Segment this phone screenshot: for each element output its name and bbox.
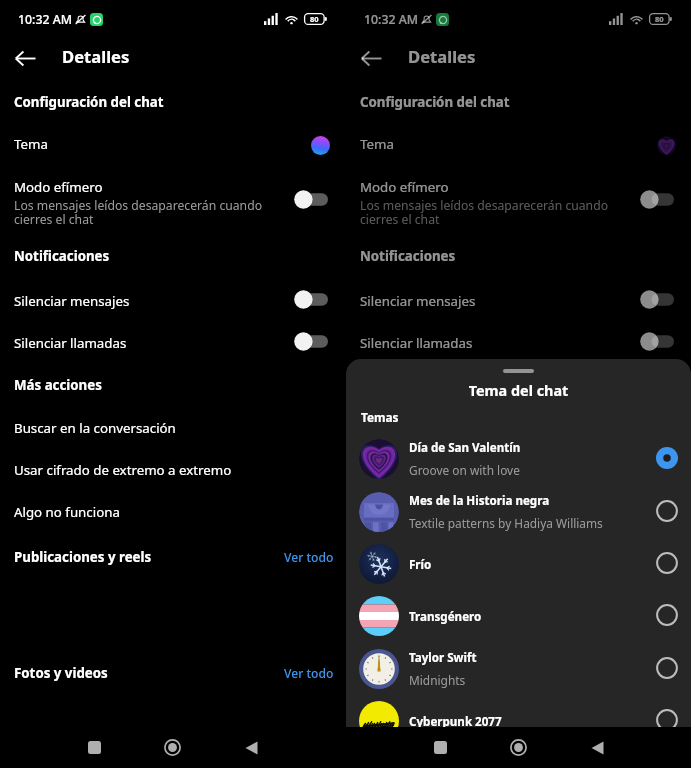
staticText: Más acciones <box>14 376 102 394</box>
staticText: Ver todo <box>630 549 680 565</box>
button[interactable]: Toggle <box>288 286 334 312</box>
staticText: Algo no funciona <box>360 503 466 521</box>
staticText: Detalles <box>62 45 130 68</box>
staticText: Tema <box>14 135 48 153</box>
staticText: Modo efímero <box>360 178 449 196</box>
staticText: 80 <box>655 14 664 24</box>
staticText: Transgénero <box>409 609 482 625</box>
staticText: Mes de la Historia negra <box>409 493 550 509</box>
staticText: Modo efímero <box>14 178 103 196</box>
button[interactable]: Algo no funciona <box>346 492 691 532</box>
staticText: Ver todo <box>284 549 334 565</box>
staticText: Publicaciones y reels <box>14 548 152 566</box>
button[interactable]: Tema <box>346 125 691 165</box>
button[interactable]: Tema <box>0 125 346 165</box>
button[interactable]: Recent apps <box>420 727 460 768</box>
staticText: Temas <box>361 409 399 425</box>
button[interactable]: Back <box>231 727 271 768</box>
staticText: Fotos y videos <box>360 664 454 682</box>
staticText: Ver todo <box>630 665 680 681</box>
button[interactable]: Mes de la Historia negra <box>346 485 691 537</box>
button[interactable]: Toggle <box>288 186 334 212</box>
button[interactable]: Día de San Valentín <box>346 432 691 484</box>
staticText: Silenciar llamadas <box>14 334 127 352</box>
staticText: 10:32 AM <box>18 11 73 28</box>
button[interactable]: Recent apps <box>74 727 114 768</box>
button[interactable]: Back <box>7 40 43 76</box>
staticText: Ver todo <box>284 665 334 681</box>
button[interactable]: Back <box>577 727 617 768</box>
button[interactable]: Home <box>498 727 538 768</box>
staticText: Usar cifrado de extremo a extremo <box>14 461 232 479</box>
button[interactable]: Taylor Swift <box>346 642 691 694</box>
staticText: Fotos y videos <box>14 664 108 682</box>
staticText: Los mensajes leídos desaparecerán cuando… <box>14 197 270 227</box>
staticText: Buscar en la conversación <box>14 419 176 437</box>
button[interactable]: Ver todo <box>279 653 338 693</box>
button[interactable]: Silenciar mensajes <box>0 281 346 321</box>
staticText: Cyberpunk 2077 <box>409 714 502 730</box>
button[interactable]: Buscar en la conversación <box>346 408 691 448</box>
button[interactable]: Silenciar llamadas <box>346 323 691 363</box>
button[interactable]: Cyberpunk 2077 <box>346 694 691 746</box>
button[interactable]: Toggle <box>288 328 334 354</box>
staticText: Notificaciones <box>14 247 110 265</box>
staticText: Frío <box>409 557 432 573</box>
button[interactable]: Silenciar llamadas <box>0 323 346 363</box>
staticText: Día de San Valentín <box>409 440 521 456</box>
button[interactable]: Modo efímero <box>0 172 346 228</box>
button[interactable]: Ver todo <box>625 537 684 577</box>
button[interactable]: Back <box>353 40 389 76</box>
button[interactable]: Modo efímero <box>346 172 691 228</box>
staticText: Silenciar llamadas <box>360 334 473 352</box>
button[interactable]: Usar cifrado de extremo a extremo <box>0 450 346 490</box>
button[interactable]: Transgénero <box>346 589 691 641</box>
staticText: Algo no funciona <box>14 503 120 521</box>
staticText: Midnights <box>409 672 466 688</box>
button[interactable]: Silenciar mensajes <box>346 281 691 321</box>
staticText: Silenciar mensajes <box>14 292 130 310</box>
staticText: Detalles <box>408 45 476 68</box>
staticText: Usar cifrado de extremo a extremo <box>360 461 578 479</box>
button[interactable]: Ver todo <box>279 537 338 577</box>
staticText: 10:32 AM <box>364 11 419 28</box>
button[interactable]: Toggle <box>634 328 680 354</box>
button[interactable]: Usar cifrado de extremo a extremo <box>346 450 691 490</box>
staticText: Textile patterns by Hadiya Williams <box>409 515 603 531</box>
staticText: 80 <box>310 14 319 24</box>
button[interactable]: Buscar en la conversación <box>0 408 346 448</box>
button[interactable]: Frío <box>346 537 691 589</box>
staticText: Taylor Swift <box>409 650 477 666</box>
staticText: Los mensajes leídos desaparecerán cuando… <box>360 197 616 227</box>
staticText: Buscar en la conversación <box>360 419 522 437</box>
staticText: Groove on with love <box>409 462 520 478</box>
staticText: Publicaciones y reels <box>360 548 498 566</box>
staticText: Configuración del chat <box>360 93 510 111</box>
button[interactable]: Home <box>152 727 192 768</box>
button[interactable]: Toggle <box>634 286 680 312</box>
staticText: Notificaciones <box>360 247 456 265</box>
staticText: Configuración del chat <box>14 93 164 111</box>
staticText: Tema del chat <box>346 381 691 401</box>
staticText: Silenciar mensajes <box>360 292 476 310</box>
button[interactable]: Ver todo <box>625 653 684 693</box>
button[interactable]: Toggle <box>634 186 680 212</box>
button[interactable]: Algo no funciona <box>0 492 346 532</box>
staticText: Tema <box>360 135 394 153</box>
